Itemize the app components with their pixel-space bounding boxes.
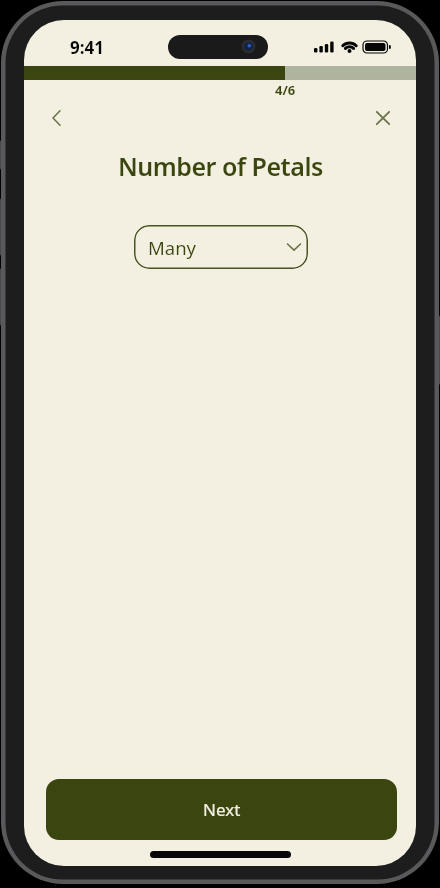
- staticText: Next: [203, 798, 241, 821]
- button[interactable]: [367, 102, 399, 134]
- button[interactable]: [41, 102, 73, 134]
- staticText: 9:41: [70, 36, 104, 56]
- staticText: Many: [148, 235, 197, 260]
- button[interactable]: Next: [46, 779, 397, 840]
- staticText: 4/6: [275, 81, 296, 99]
- button[interactable]: Many: [134, 225, 308, 269]
- staticText: Number of Petals: [118, 149, 323, 183]
